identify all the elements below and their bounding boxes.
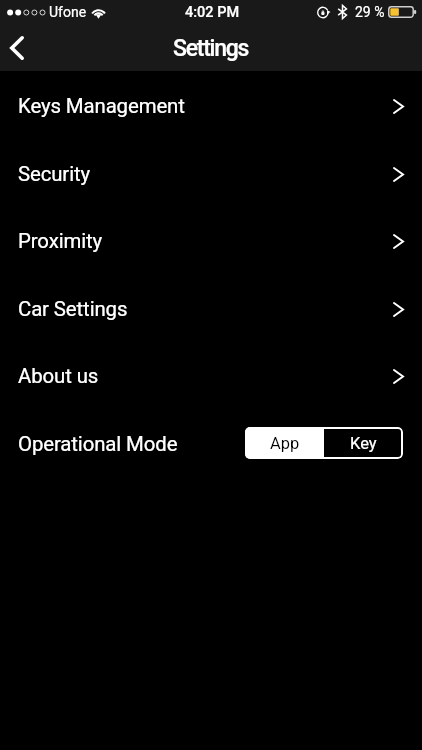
staticText: Keys Management [18, 94, 185, 118]
staticText: Ufone [49, 4, 87, 20]
button[interactable]: Keys Management [0, 72, 422, 139]
staticText: About us [18, 364, 99, 388]
button[interactable]: About us [0, 342, 422, 409]
button[interactable]: Key [324, 427, 403, 459]
staticText: Security [18, 162, 91, 186]
staticText: Key [350, 434, 377, 453]
staticText: Proximity [18, 229, 103, 253]
staticText: 29 % [355, 4, 385, 20]
staticText: Settings [173, 35, 249, 62]
staticText: Operational Mode [18, 432, 178, 456]
staticText: App [270, 434, 300, 453]
button[interactable]: Car Settings [0, 275, 422, 342]
staticText: 4:02 PM [185, 4, 240, 21]
button[interactable]: Proximity [0, 207, 422, 274]
button[interactable]: Security [0, 140, 422, 207]
staticText: Car Settings [18, 297, 128, 321]
button[interactable]: App [245, 427, 324, 459]
button[interactable]: Back [0, 26, 44, 71]
